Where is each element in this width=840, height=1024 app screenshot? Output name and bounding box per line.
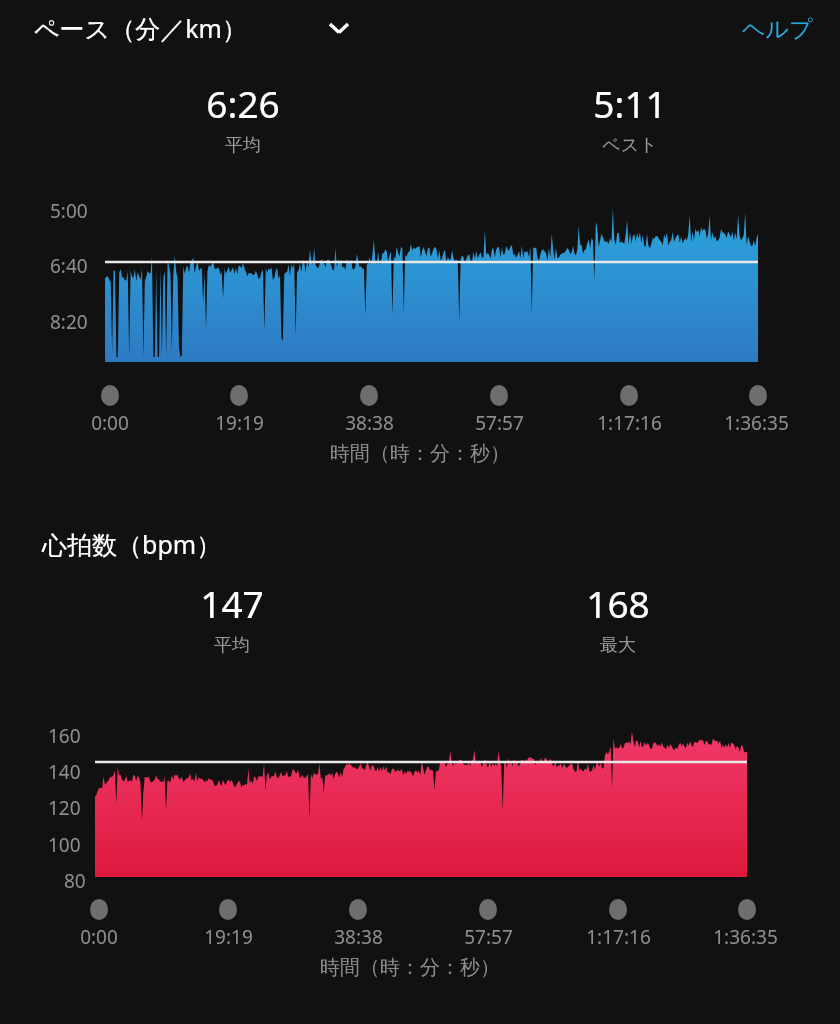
- staticText: 平均: [225, 134, 261, 157]
- staticText: 140: [48, 759, 81, 785]
- button[interactable]: 心拍数（bpm）: [42, 524, 332, 564]
- button[interactable]: ヘルプ: [742, 8, 832, 50]
- staticText: 時間（時：分：秒）: [330, 441, 510, 466]
- staticText: ペース（分／km）: [34, 11, 247, 45]
- staticText: 5:11: [593, 78, 667, 128]
- staticText: 38:38: [345, 410, 394, 436]
- staticText: 心拍数（bpm）: [42, 527, 222, 561]
- staticText: 平均: [214, 634, 250, 657]
- staticText: 80: [64, 868, 86, 894]
- staticText: 57:57: [464, 924, 513, 950]
- staticText: ベスト: [602, 134, 658, 157]
- staticText: 38:38: [334, 924, 383, 950]
- staticText: 1:36:35: [724, 410, 789, 436]
- staticText: 1:17:16: [597, 410, 662, 436]
- staticText: 19:19: [215, 410, 264, 436]
- staticText: 0:00: [80, 924, 118, 950]
- staticText: 160: [48, 723, 81, 749]
- staticText: 120: [48, 795, 81, 821]
- staticText: ヘルプ: [742, 15, 813, 44]
- staticText: 6:26: [206, 78, 280, 128]
- staticText: 1:17:16: [586, 924, 651, 950]
- staticText: 5:00: [50, 198, 88, 224]
- staticText: 147: [200, 578, 264, 628]
- staticText: 8:20: [50, 309, 88, 335]
- staticText: 19:19: [204, 924, 253, 950]
- staticText: 57:57: [475, 410, 524, 436]
- staticText: 100: [48, 832, 81, 858]
- staticText: 最大: [600, 634, 636, 657]
- staticText: 1:36:35: [713, 924, 778, 950]
- staticText: 時間（時：分：秒）: [320, 955, 500, 980]
- staticText: 6:40: [50, 253, 88, 279]
- button[interactable]: ペース（分／km）: [34, 6, 364, 50]
- staticText: 168: [586, 578, 650, 628]
- staticText: 0:00: [91, 410, 129, 436]
